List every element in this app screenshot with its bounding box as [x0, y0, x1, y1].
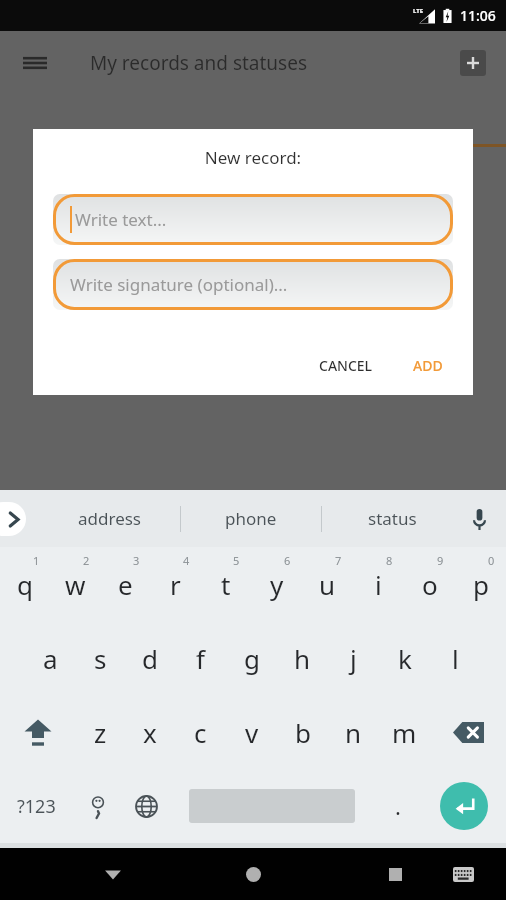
button[interactable]: Backspace: [430, 695, 506, 769]
button[interactable]: z: [75, 695, 125, 769]
staticText: e: [118, 567, 133, 602]
staticText: b: [295, 715, 311, 750]
button[interactable]: Write text...: [53, 194, 453, 245]
button[interactable]: s: [75, 621, 125, 695]
staticText: y: [270, 567, 284, 602]
staticText: r: [170, 567, 181, 602]
button[interactable]: Shift: [0, 695, 75, 769]
staticText: LTE: [413, 7, 424, 15]
button[interactable]: Space: [171, 769, 373, 843]
staticText: g: [244, 641, 260, 676]
button[interactable]: p: [455, 547, 506, 621]
staticText: ADD: [413, 356, 443, 375]
button[interactable]: u: [302, 547, 353, 621]
staticText: CANCEL: [319, 356, 373, 375]
button[interactable]: o: [404, 547, 455, 621]
button[interactable]: Add record: [460, 50, 486, 76]
staticText: 3: [133, 553, 140, 568]
button[interactable]: r: [150, 547, 200, 621]
button[interactable]: Back: [96, 857, 130, 891]
button[interactable]: Tab 1: [14, 94, 164, 147]
button[interactable]: a: [25, 621, 75, 695]
button[interactable]: phone: [181, 490, 321, 547]
staticText: phone: [225, 507, 277, 530]
staticText: 11:06: [460, 6, 496, 25]
button[interactable]: ?123: [0, 769, 73, 843]
button[interactable]: ADD: [403, 348, 453, 383]
staticText: h: [294, 641, 311, 676]
button[interactable]: Home: [236, 857, 270, 891]
staticText: q: [17, 567, 33, 602]
staticText: New record:: [33, 146, 473, 169]
staticText: c: [194, 715, 207, 750]
button[interactable]: m: [379, 695, 430, 769]
button[interactable]: j: [328, 621, 379, 695]
button[interactable]: Voice input: [462, 502, 496, 536]
staticText: n: [345, 715, 362, 750]
staticText: i: [375, 567, 382, 602]
button[interactable]: f: [175, 621, 226, 695]
staticText: status: [368, 507, 417, 530]
button[interactable]: .: [373, 769, 422, 843]
staticText: k: [398, 641, 412, 676]
button[interactable]: CANCEL: [309, 348, 383, 383]
staticText: My records and statuses: [90, 50, 308, 76]
button[interactable]: Write signature (optional)...: [53, 259, 453, 310]
button[interactable]: e: [100, 547, 150, 621]
button[interactable]: Switch keyboard: [446, 857, 480, 891]
staticText: m: [392, 715, 417, 750]
staticText: Write signature (optional)...: [70, 273, 288, 296]
button[interactable]: Change language: [122, 769, 171, 843]
button[interactable]: Enter: [422, 769, 506, 843]
button[interactable]: Tab 2: [178, 94, 328, 147]
staticText: u: [319, 567, 336, 602]
staticText: w: [65, 567, 86, 602]
staticText: a: [43, 641, 58, 676]
button[interactable]: g: [226, 621, 277, 695]
staticText: d: [142, 641, 158, 676]
button[interactable]: More suggestions: [0, 502, 26, 536]
staticText: 5: [233, 553, 240, 568]
staticText: v: [245, 715, 259, 750]
button[interactable]: t: [200, 547, 251, 621]
staticText: f: [196, 641, 205, 676]
staticText: p: [473, 567, 489, 602]
staticText: o: [422, 567, 438, 602]
button[interactable]: c: [175, 695, 226, 769]
button[interactable]: k: [379, 621, 430, 695]
button[interactable]: Recent apps: [378, 857, 412, 891]
button[interactable]: y: [251, 547, 302, 621]
button[interactable]: b: [277, 695, 328, 769]
staticText: 1: [33, 553, 40, 568]
staticText: t: [221, 567, 231, 602]
button[interactable]: x: [125, 695, 175, 769]
button[interactable]: i: [353, 547, 404, 621]
button[interactable]: l: [430, 621, 481, 695]
staticText: 4: [183, 553, 190, 568]
staticText: 8: [386, 553, 393, 568]
staticText: ?123: [17, 794, 56, 819]
staticText: 2: [83, 553, 90, 568]
staticText: x: [143, 715, 157, 750]
staticText: 7: [335, 553, 342, 568]
staticText: 0: [488, 553, 495, 568]
button[interactable]: w: [50, 547, 100, 621]
staticText: z: [94, 715, 107, 750]
button[interactable]: n: [328, 695, 379, 769]
staticText: address: [78, 507, 142, 530]
button[interactable]: v: [226, 695, 277, 769]
button[interactable]: h: [277, 621, 328, 695]
staticText: j: [350, 641, 357, 676]
staticText: Write text...: [75, 208, 167, 231]
staticText: s: [94, 641, 107, 676]
button[interactable]: Tab 3: [342, 94, 492, 147]
button[interactable]: status: [322, 490, 462, 547]
button[interactable]: q: [0, 547, 50, 621]
button[interactable]: d: [125, 621, 175, 695]
button[interactable]: address: [40, 490, 180, 547]
staticText: 6: [284, 553, 291, 568]
button[interactable]: Emoji and comma: [73, 769, 122, 843]
staticText: 9: [437, 553, 444, 568]
button[interactable]: Open navigation menu: [20, 48, 50, 78]
staticText: l: [452, 641, 459, 676]
